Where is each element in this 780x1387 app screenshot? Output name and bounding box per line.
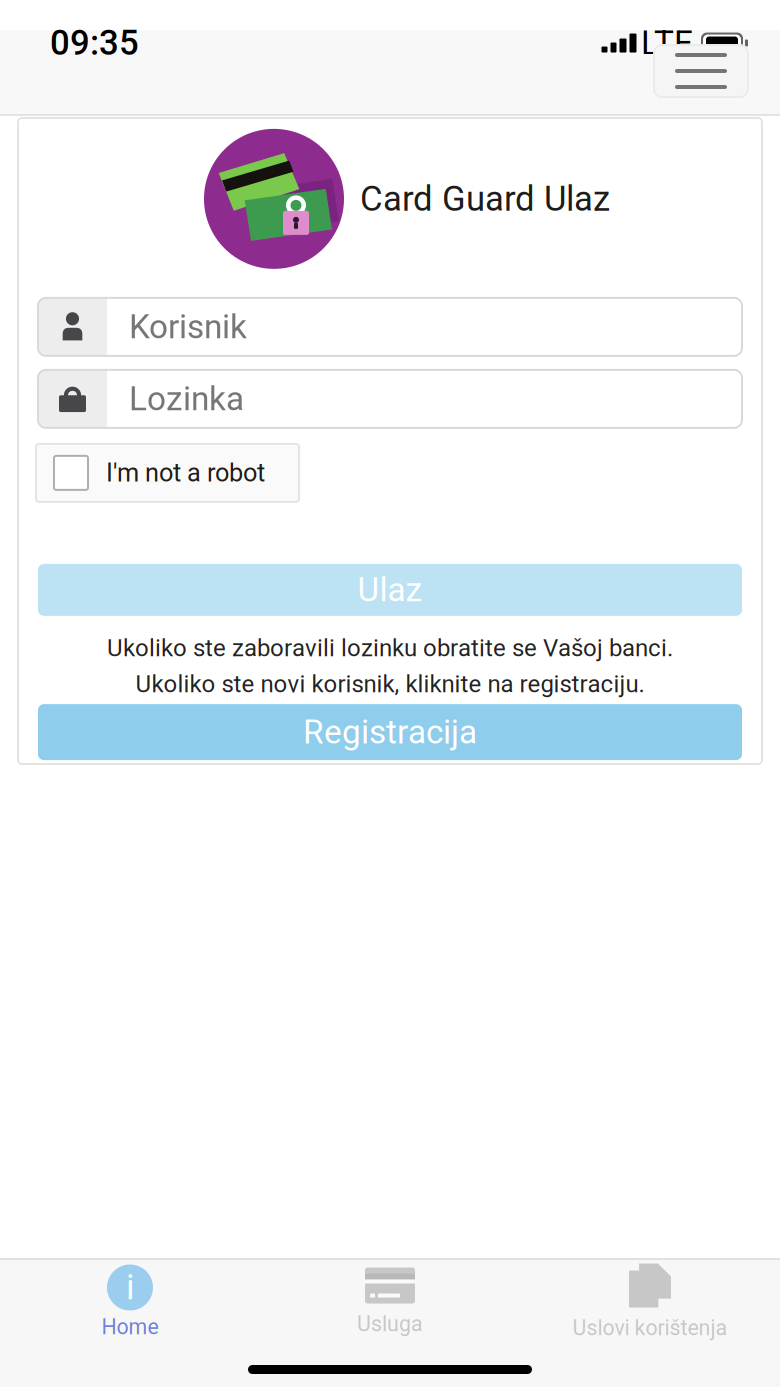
staticText: Home: [101, 1314, 158, 1339]
staticText: 09:35: [50, 23, 139, 63]
staticText: i: [126, 1267, 134, 1308]
button[interactable]: Usluga: [260, 1260, 520, 1344]
staticText: Uslovi korištenja: [572, 1315, 727, 1340]
staticText: Ukoliko ste novi korisnik, kliknite na r…: [135, 670, 644, 698]
staticText: Lozinka: [129, 379, 244, 418]
staticText: I'm not a robot: [106, 458, 265, 488]
button[interactable]: Registracija: [38, 704, 742, 760]
staticText: Ukoliko ste zaboravili lozinku obratite …: [107, 634, 673, 662]
staticText: Card Guard Ulaz: [360, 179, 610, 219]
button[interactable]: I'm not a robot: [36, 444, 299, 502]
button[interactable]: Ulaz: [38, 564, 742, 616]
staticText: Registracija: [303, 713, 477, 752]
button[interactable]: Korisnik: [38, 298, 742, 356]
button[interactable]: Menu: [654, 45, 748, 97]
button[interactable]: Lozinka: [38, 370, 742, 428]
button[interactable]: Uslovi korištenja: [520, 1260, 780, 1344]
staticText: Usluga: [357, 1311, 423, 1336]
button[interactable]: i: [0, 1260, 260, 1344]
staticText: LTE: [641, 23, 693, 63]
staticText: Korisnik: [129, 307, 247, 346]
staticText: Ulaz: [357, 570, 422, 609]
